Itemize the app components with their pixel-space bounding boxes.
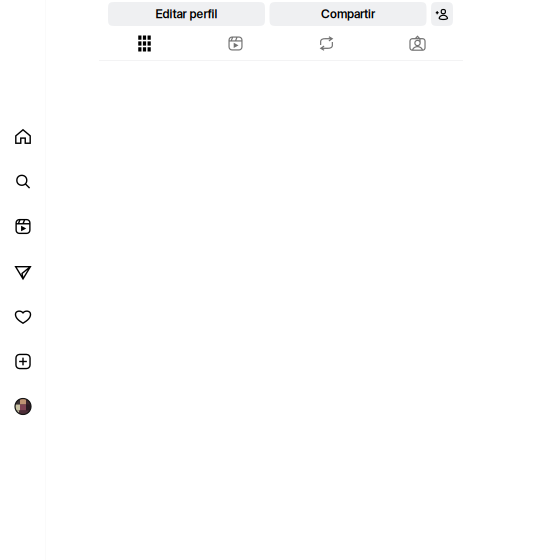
button[interactable]: Reels (0, 204, 45, 249)
button[interactable]: Etiquetadas (372, 27, 463, 60)
button[interactable]: Crear (0, 339, 45, 384)
button[interactable]: Búsqueda (0, 159, 45, 204)
button[interactable]: Republicaciones (281, 27, 372, 60)
button[interactable]: Editar perfil (108, 2, 265, 26)
button[interactable]: Publicaciones (99, 27, 190, 60)
button[interactable]: Inicio (0, 114, 45, 159)
button[interactable]: Reels (190, 27, 281, 60)
button[interactable]: Mensajes (0, 249, 45, 294)
button[interactable]: Descubrir personas (431, 2, 453, 26)
staticText: Compartir (321, 7, 375, 21)
button[interactable]: Perfil (0, 384, 45, 429)
button[interactable]: Compartir (269, 2, 426, 26)
staticText: Editar perfil (155, 7, 217, 21)
button[interactable]: Notificaciones (0, 294, 45, 339)
